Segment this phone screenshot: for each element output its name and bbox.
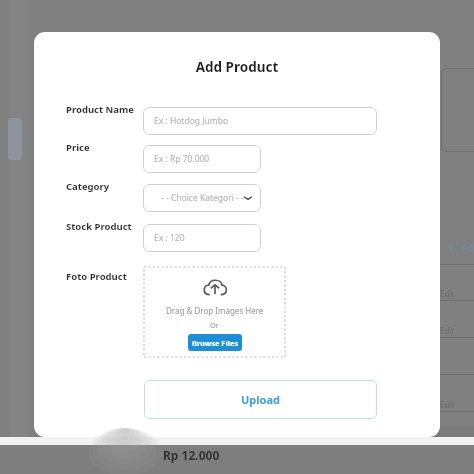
staticText: Add Product	[34, 58, 440, 76]
staticText: - - Choice Kategori - -	[161, 192, 244, 204]
button[interactable]: Ex : Rp 70.000	[143, 145, 261, 173]
staticText: Foto Product	[66, 270, 127, 283]
button[interactable]: Drag & Drop Images Here	[144, 267, 285, 357]
button[interactable]: Upload	[144, 380, 377, 419]
staticText: Browse Files	[192, 338, 239, 348]
staticText: Ex : 120	[154, 232, 185, 244]
staticText: Or	[210, 320, 219, 330]
staticText: Product Name	[66, 103, 134, 116]
staticText: Edit	[440, 325, 455, 336]
staticText: Price	[66, 141, 90, 154]
button[interactable]: Ex : Hotdog Jumbo	[143, 107, 377, 135]
staticText: Edit	[440, 399, 455, 410]
button[interactable]: Browse Files	[188, 334, 242, 351]
staticText: Edit	[440, 288, 455, 299]
staticText: Add	[461, 241, 474, 253]
button[interactable]: - - Choice Kategori - -	[143, 184, 261, 212]
staticText: Ex : Rp 70.000	[154, 153, 210, 165]
button[interactable]: Ex : 120	[143, 224, 261, 252]
staticText: Rp 12.000	[163, 447, 220, 463]
staticText: Category	[66, 180, 110, 193]
staticText: Upload	[241, 392, 280, 407]
staticText: Drag & Drop Images Here	[166, 305, 264, 316]
staticText: Ex : Hotdog Jumbo	[154, 115, 229, 127]
staticText: Stock Product	[66, 220, 132, 233]
